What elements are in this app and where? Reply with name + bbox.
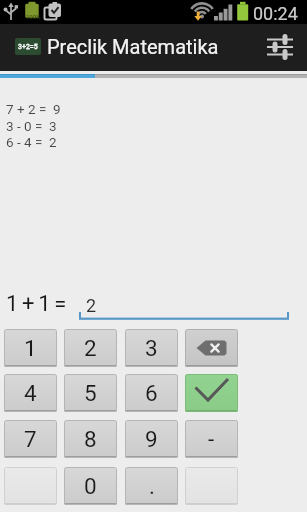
button[interactable] bbox=[185, 374, 238, 412]
staticText: 0 bbox=[84, 473, 97, 499]
button[interactable]: 5 bbox=[64, 374, 117, 412]
staticText: 3 - 0 = 3 bbox=[6, 118, 57, 134]
staticText: 7 + 2 = 9 bbox=[6, 101, 61, 117]
button[interactable] bbox=[260, 32, 300, 64]
staticText: 9 bbox=[145, 426, 158, 452]
staticText: 1 bbox=[24, 335, 37, 361]
staticText: - bbox=[208, 426, 215, 452]
staticText: . bbox=[149, 473, 155, 499]
staticText: 8 bbox=[84, 426, 97, 452]
staticText: 3 bbox=[145, 335, 158, 361]
button[interactable]: . bbox=[125, 467, 178, 505]
button[interactable]: 1 bbox=[4, 329, 57, 367]
button[interactable]: 3 bbox=[125, 329, 178, 367]
staticText: 3+2=5 bbox=[18, 43, 38, 51]
staticText: 1 + 1 = bbox=[6, 291, 66, 317]
staticText: 5 bbox=[84, 380, 97, 406]
staticText: 4 bbox=[24, 380, 37, 406]
button[interactable]: 2 bbox=[79, 289, 290, 321]
staticText: 6 bbox=[145, 380, 158, 406]
button[interactable]: 2 bbox=[64, 329, 117, 367]
button[interactable]: 9 bbox=[125, 420, 178, 458]
button[interactable] bbox=[185, 467, 238, 505]
staticText: 6 - 4 = 2 bbox=[6, 134, 57, 150]
button[interactable] bbox=[4, 467, 57, 505]
staticText: 7 bbox=[24, 426, 37, 452]
button[interactable]: 4 bbox=[4, 374, 57, 412]
staticText: 100% bbox=[26, 13, 41, 20]
button[interactable]: - bbox=[185, 420, 238, 458]
button[interactable]: 8 bbox=[64, 420, 117, 458]
staticText: 00:24 bbox=[253, 3, 298, 24]
button[interactable]: 7 bbox=[4, 420, 57, 458]
staticText: 2 bbox=[84, 335, 97, 361]
button[interactable] bbox=[185, 329, 238, 367]
button[interactable]: 6 bbox=[125, 374, 178, 412]
staticText: Preclik Matematika bbox=[47, 35, 219, 58]
button[interactable]: 0 bbox=[64, 467, 117, 505]
staticText: 2 bbox=[86, 295, 97, 316]
